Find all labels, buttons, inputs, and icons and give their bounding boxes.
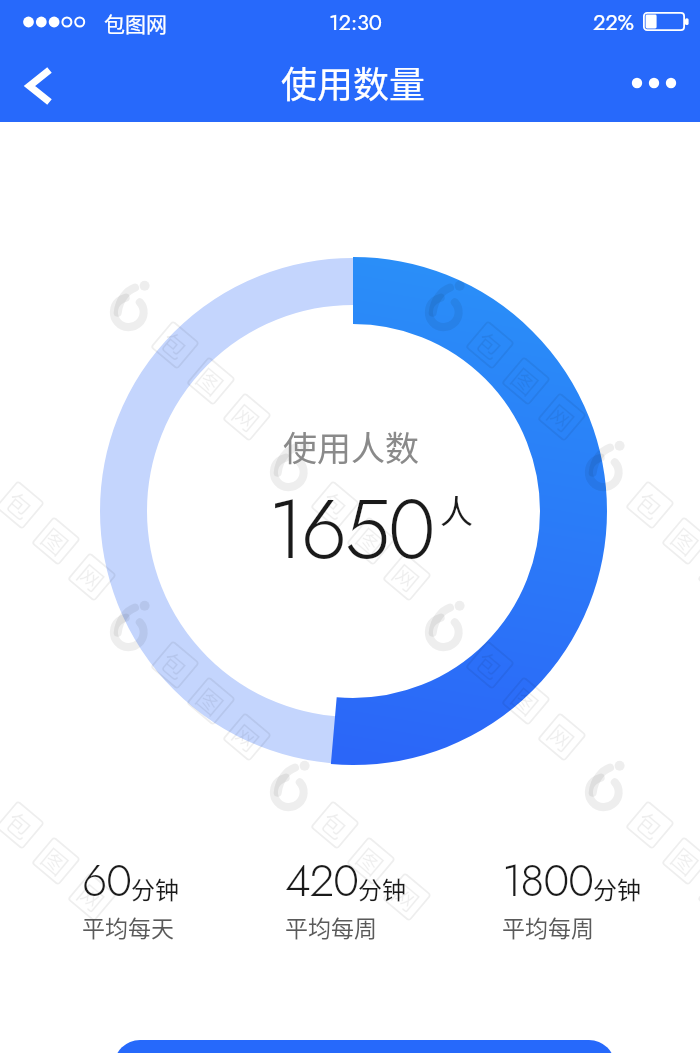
staticText: 图 xyxy=(664,519,700,563)
staticText: 图 xyxy=(504,679,548,723)
staticText: 网 xyxy=(540,395,584,439)
staticText: 分钟 xyxy=(131,871,179,906)
staticText: 图 xyxy=(349,839,393,883)
button[interactable]: Confirm xyxy=(114,1040,615,1053)
staticText: 网 xyxy=(225,715,269,759)
staticText: 60 xyxy=(82,848,131,913)
staticText: 人 xyxy=(440,486,473,534)
staticText: 网 xyxy=(540,715,584,759)
staticText: 使用数量 xyxy=(281,56,426,108)
staticText: 网 xyxy=(70,875,114,919)
staticText: 1650 xyxy=(268,470,434,588)
staticText: 图 xyxy=(504,359,548,403)
staticText: 12:30 xyxy=(329,6,382,38)
staticText: 包 xyxy=(468,643,512,687)
button[interactable]: More options xyxy=(614,52,694,114)
staticText: 图 xyxy=(34,839,78,883)
staticText: 图 xyxy=(34,519,78,563)
staticText: 包 xyxy=(628,483,672,527)
staticText: 1800 xyxy=(502,848,593,913)
staticText: 图 xyxy=(664,839,700,883)
staticText: 包 xyxy=(153,323,197,367)
staticText: 包 xyxy=(313,803,357,847)
staticText: 包 xyxy=(628,803,672,847)
staticText: 包 xyxy=(0,803,42,847)
button[interactable]: Back xyxy=(4,52,74,114)
staticText: 包 xyxy=(468,323,512,367)
staticText: 图 xyxy=(189,359,233,403)
staticText: 网 xyxy=(225,395,269,439)
staticText: 网 xyxy=(385,555,429,599)
staticText: 平均每周 xyxy=(502,910,594,943)
staticText: 包图网 xyxy=(104,8,167,38)
staticText: 包 xyxy=(0,483,42,527)
staticText: 网 xyxy=(385,875,429,919)
staticText: 平均每天 xyxy=(82,910,174,943)
staticText: 22% xyxy=(593,6,634,38)
staticText: 图 xyxy=(349,519,393,563)
staticText: 420 xyxy=(285,848,358,913)
staticText: 分钟 xyxy=(593,871,641,906)
staticText: 图 xyxy=(189,679,233,723)
staticText: 使用人数 xyxy=(283,422,419,471)
staticText: 包 xyxy=(313,483,357,527)
staticText: 网 xyxy=(70,555,114,599)
staticText: 分钟 xyxy=(358,871,406,906)
staticText: 包 xyxy=(153,643,197,687)
staticText: 平均每周 xyxy=(285,910,377,943)
